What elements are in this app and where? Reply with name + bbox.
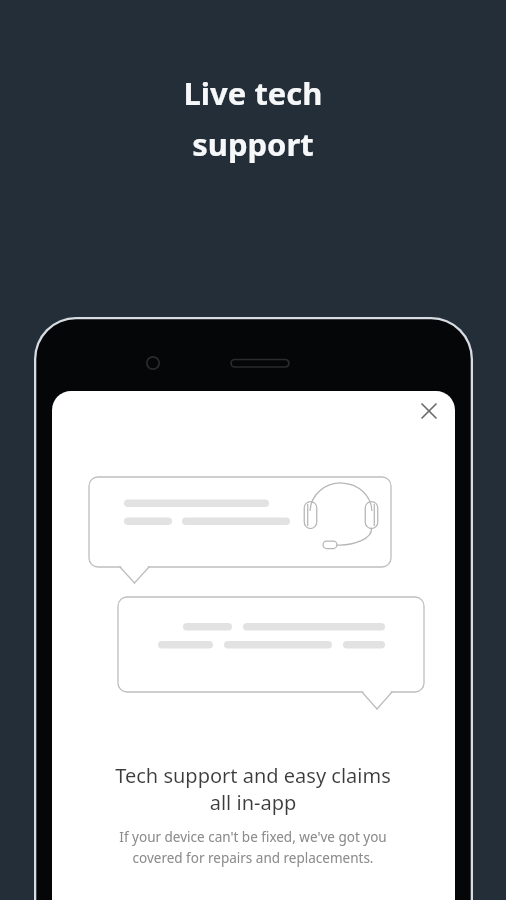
staticText: If your device can't be fixed, we've got… — [56, 828, 450, 867]
button[interactable]: Close — [411, 393, 447, 429]
staticText: Live tech support — [0, 72, 506, 165]
staticText: Tech support and easy claims all in-app — [56, 762, 450, 816]
